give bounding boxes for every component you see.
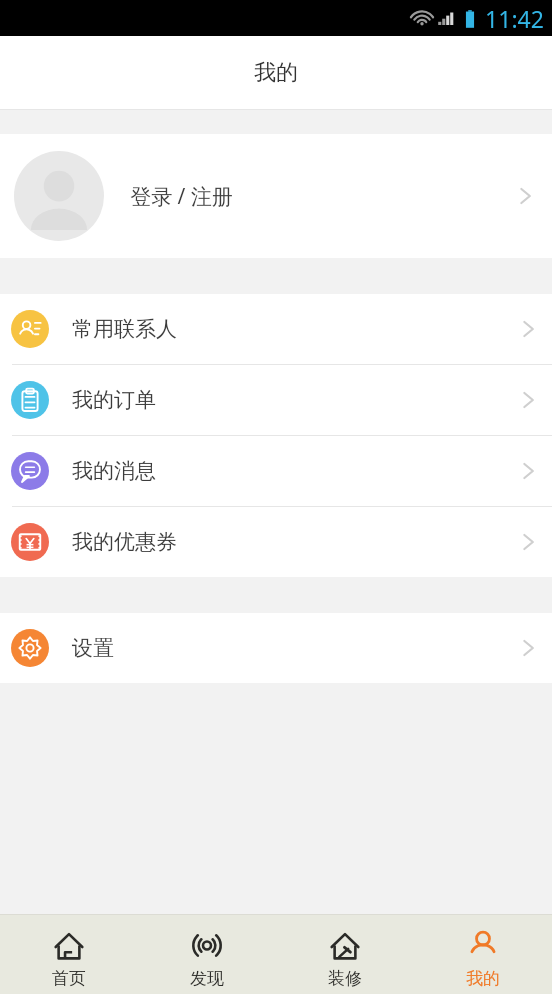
button[interactable]: 装修 bbox=[276, 920, 414, 989]
button[interactable]: 我的订单 bbox=[0, 365, 552, 436]
button[interactable]: 常用联系人 bbox=[0, 294, 552, 365]
button[interactable]: 我的 bbox=[414, 920, 552, 989]
staticText: 常用联系人 bbox=[72, 316, 177, 342]
staticText: 11:42 bbox=[485, 3, 544, 34]
staticText: 登录 / 注册 bbox=[130, 182, 233, 211]
staticText: 我的 bbox=[254, 59, 298, 87]
staticText: 我的消息 bbox=[72, 458, 156, 484]
button[interactable]: 设置 bbox=[0, 613, 552, 683]
staticText: 我的 bbox=[466, 968, 500, 989]
staticText: 首页 bbox=[52, 968, 86, 989]
staticText: 发现 bbox=[190, 968, 224, 989]
button[interactable]: 发现 bbox=[138, 920, 276, 989]
staticText: 我的优惠券 bbox=[72, 529, 177, 555]
staticText: 设置 bbox=[72, 635, 114, 661]
button[interactable]: 我的消息 bbox=[0, 436, 552, 507]
staticText: 我的订单 bbox=[72, 387, 156, 413]
button[interactable]: 首页 bbox=[0, 920, 138, 989]
button[interactable]: 我的优惠券 bbox=[0, 507, 552, 577]
button[interactable]: 登录 / 注册 bbox=[0, 134, 552, 258]
staticText: 装修 bbox=[328, 968, 362, 989]
